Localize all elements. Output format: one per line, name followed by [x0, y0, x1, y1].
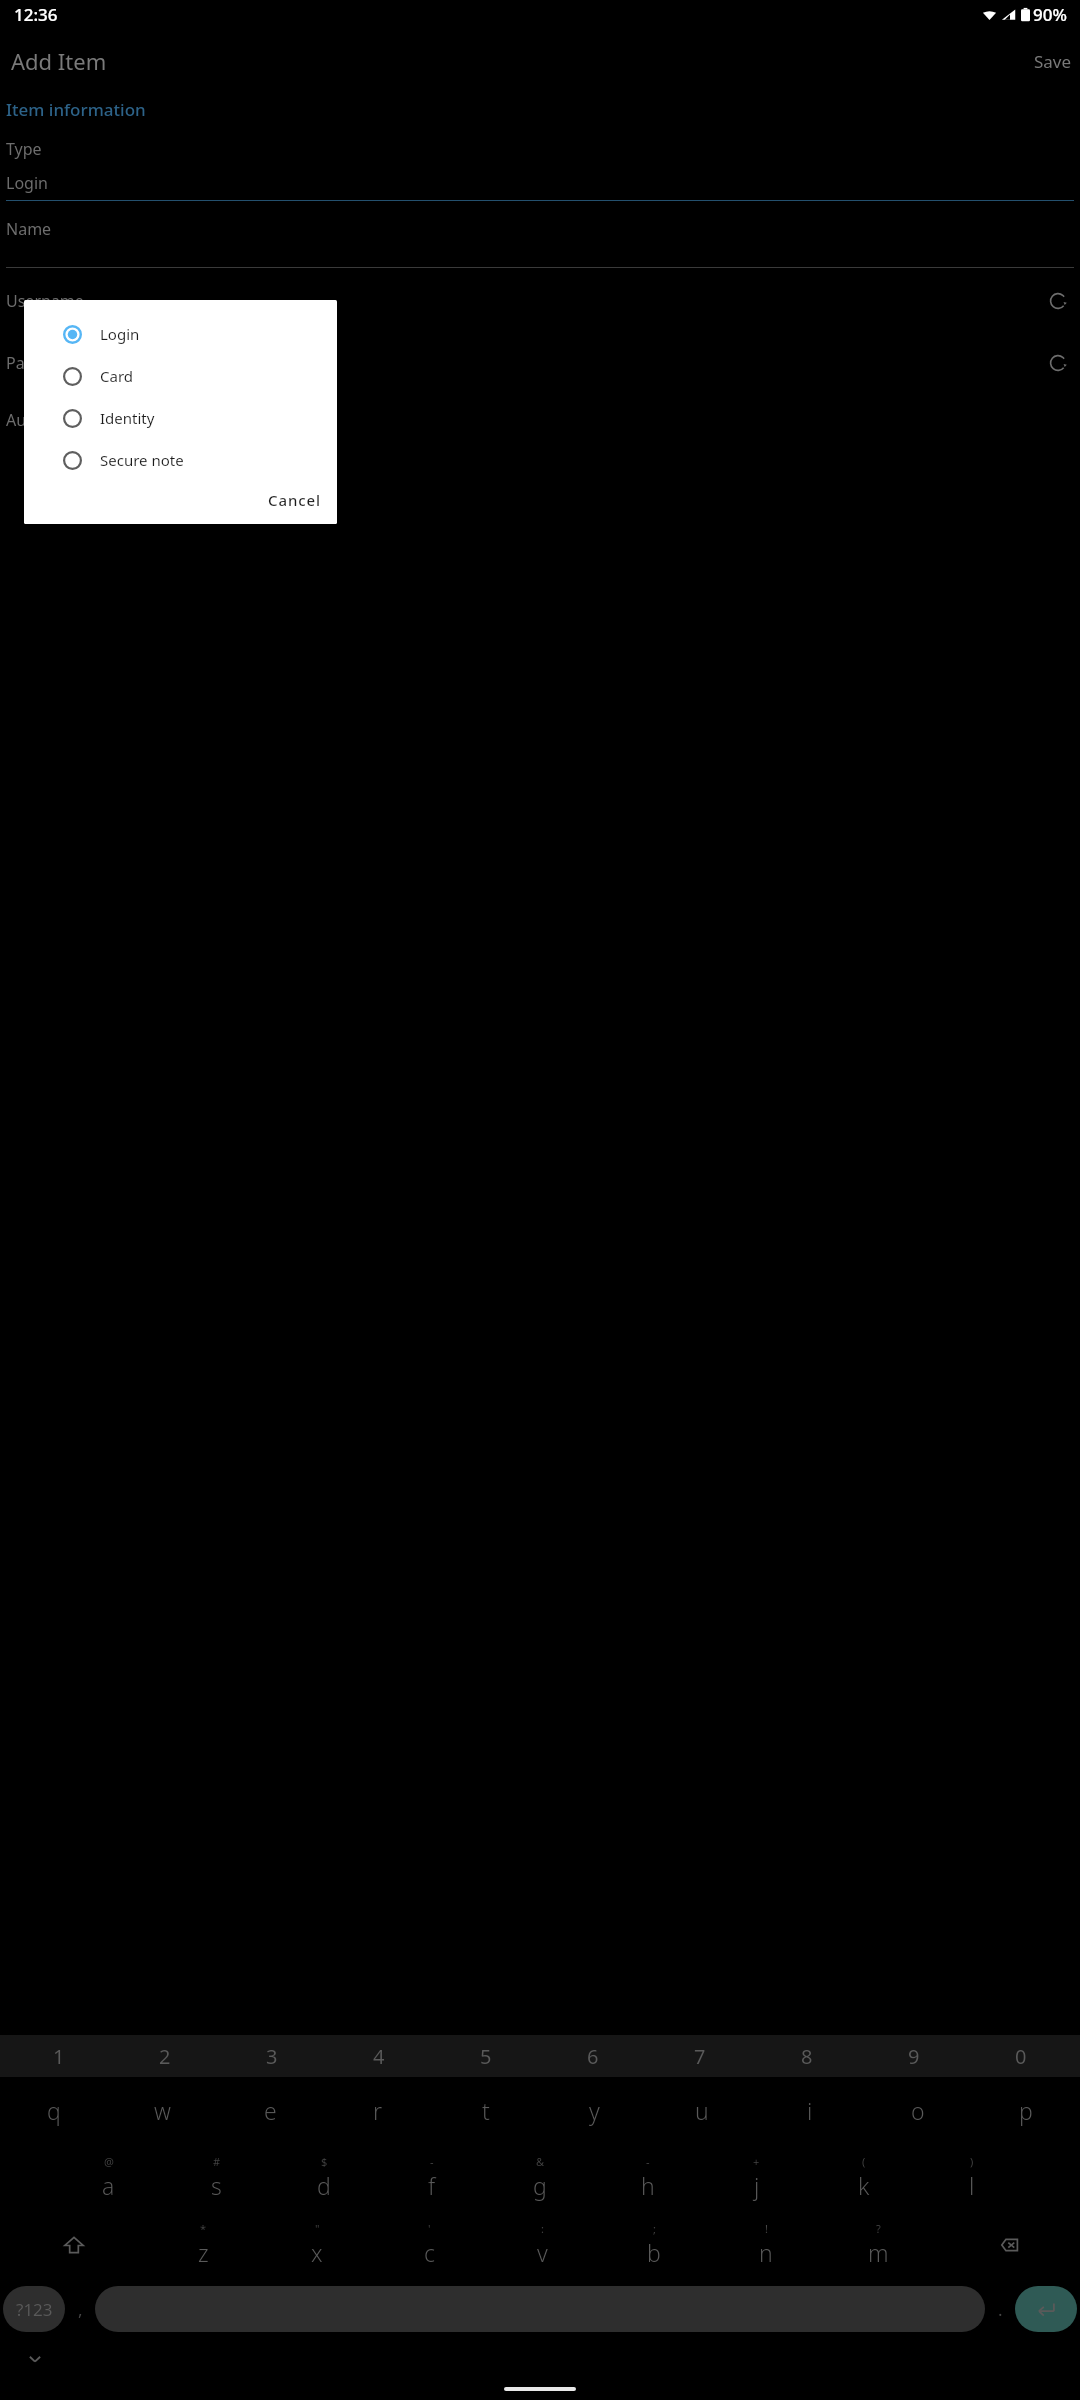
staticText: - — [646, 2154, 650, 2169]
staticText: Card — [100, 366, 134, 386]
button[interactable]: * — [147, 2211, 260, 2278]
staticText: Pa — [6, 352, 1042, 374]
staticText: u — [695, 2095, 709, 2126]
staticText: b — [647, 2237, 661, 2268]
button[interactable]: 5 — [432, 2035, 539, 2077]
staticText: o — [911, 2095, 925, 2126]
staticText: i — [807, 2095, 813, 2126]
button[interactable]: " — [260, 2211, 373, 2278]
button[interactable]: 1 — [6, 2035, 112, 2077]
button[interactable]: i — [756, 2077, 864, 2144]
staticText: y — [589, 2095, 600, 2126]
staticText: # — [213, 2154, 221, 2169]
button[interactable]: Shift — [0, 2211, 147, 2278]
staticText: Save — [1034, 50, 1072, 73]
button[interactable]: ! — [710, 2211, 822, 2278]
staticText: 5 — [480, 2043, 492, 2070]
staticText: 6 — [587, 2043, 599, 2070]
staticText: m — [868, 2237, 889, 2268]
staticText: 3 — [266, 2043, 278, 2070]
staticText: Item information — [6, 98, 146, 121]
button[interactable]: $ — [270, 2144, 378, 2211]
staticText: 7 — [694, 2043, 706, 2070]
button[interactable]: y — [540, 2077, 648, 2144]
staticText: + — [753, 2154, 760, 2169]
staticText: . — [998, 2298, 1003, 2321]
staticText: v — [537, 2237, 548, 2268]
button[interactable]: Cancel — [252, 481, 337, 519]
button[interactable]: & — [486, 2144, 594, 2211]
button[interactable]: - — [594, 2144, 702, 2211]
staticText: ! — [765, 2221, 768, 2236]
staticText: ) — [970, 2154, 974, 2169]
button[interactable]: u — [648, 2077, 756, 2144]
staticText: Add Item — [11, 46, 107, 76]
staticText: 8 — [801, 2043, 813, 2070]
button[interactable]: p — [972, 2077, 1080, 2144]
staticText: p — [1019, 2095, 1033, 2126]
staticText: 1 — [53, 2043, 65, 2070]
staticText: n — [759, 2237, 773, 2268]
staticText: l — [969, 2170, 975, 2201]
button[interactable]: 7 — [646, 2035, 753, 2077]
button[interactable]: ( — [810, 2144, 918, 2211]
button[interactable]: 4 — [325, 2035, 432, 2077]
staticText: k — [858, 2170, 870, 2201]
button[interactable]: 9 — [860, 2035, 967, 2077]
button[interactable]: ) — [918, 2144, 1026, 2211]
button[interactable]: @ — [54, 2144, 162, 2211]
button[interactable]: 6 — [539, 2035, 646, 2077]
staticText: d — [317, 2170, 331, 2201]
button[interactable]: 2 — [112, 2035, 218, 2077]
button[interactable]: Space — [95, 2286, 985, 2332]
button[interactable]: Identity — [24, 397, 337, 439]
staticText: s — [211, 2170, 222, 2201]
button[interactable]: Backspace — [934, 2211, 1080, 2278]
staticText: t — [482, 2095, 490, 2126]
button[interactable]: Secure note — [24, 439, 337, 481]
button[interactable]: e — [216, 2077, 324, 2144]
button[interactable]: ?123 — [3, 2286, 65, 2332]
staticText: 12:36 — [14, 3, 58, 26]
button[interactable]: + — [702, 2144, 810, 2211]
button[interactable]: Regenerate — [1042, 285, 1074, 317]
staticText: f — [428, 2170, 436, 2201]
button[interactable]: ' — [373, 2211, 486, 2278]
button[interactable]: Hide keyboard — [22, 2346, 48, 2372]
button[interactable]: 3 — [218, 2035, 325, 2077]
button[interactable]: ? — [822, 2211, 934, 2278]
staticText: x — [311, 2237, 323, 2268]
staticText: g — [533, 2170, 547, 2201]
staticText: 90% — [1033, 3, 1067, 26]
staticText: 9 — [908, 2043, 920, 2070]
button[interactable]: Card — [24, 355, 337, 397]
button[interactable]: o — [864, 2077, 972, 2144]
button[interactable]: # — [162, 2144, 270, 2211]
staticText: w — [154, 2095, 171, 2126]
button[interactable]: w — [108, 2077, 216, 2144]
button[interactable]: Regenerate — [1042, 347, 1074, 379]
button[interactable]: : — [486, 2211, 598, 2278]
button[interactable]: - — [378, 2144, 486, 2211]
button[interactable]: 0 — [967, 2035, 1074, 2077]
button[interactable]: Save — [1026, 46, 1080, 77]
staticText: Login — [6, 172, 48, 194]
button[interactable]: q — [0, 2077, 108, 2144]
button[interactable]: ; — [598, 2211, 710, 2278]
staticText: Type — [6, 138, 42, 160]
staticText: r — [373, 2095, 383, 2126]
staticText: @ — [104, 2154, 114, 2169]
button[interactable]: Login — [24, 313, 337, 355]
staticText: Cancel — [268, 490, 321, 510]
staticText: e — [264, 2095, 277, 2126]
staticText: ' — [428, 2221, 431, 2236]
staticText: a — [102, 2170, 115, 2201]
button[interactable]: 8 — [753, 2035, 860, 2077]
staticText: ; — [653, 2221, 656, 2236]
button[interactable]: , — [65, 2278, 95, 2340]
button[interactable]: Enter — [1015, 2286, 1077, 2332]
button[interactable]: r — [324, 2077, 432, 2144]
button[interactable]: t — [432, 2077, 540, 2144]
staticText: Identity — [100, 408, 155, 428]
